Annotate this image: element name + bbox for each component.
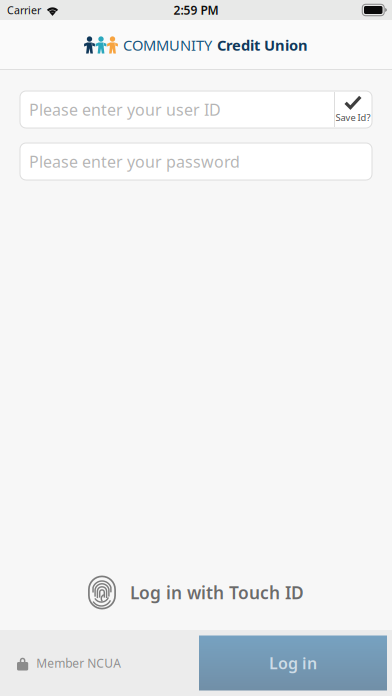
button[interactable]: Log in with Touch ID — [88, 569, 304, 616]
staticText: Carrier — [7, 3, 41, 17]
staticText: Log in with Touch ID — [130, 581, 304, 604]
staticText: Save Id? — [335, 111, 370, 123]
staticText: Log in — [269, 652, 317, 674]
staticText: COMMUNITY — [123, 35, 212, 55]
staticText: 2:59 PM — [173, 2, 218, 18]
staticText: Please enter your user ID — [29, 99, 221, 120]
button[interactable]: Log in — [199, 635, 387, 690]
staticText: Credit Union — [217, 35, 308, 55]
staticText: Please enter your password — [29, 151, 240, 172]
button[interactable]: Save Id? — [334, 92, 372, 127]
staticText: Member NCUA — [36, 655, 121, 671]
